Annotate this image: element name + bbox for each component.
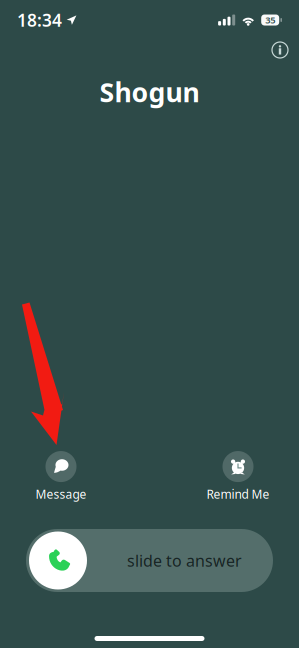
staticText: 18:34 (17, 8, 62, 31)
staticText: Message (35, 486, 86, 502)
button[interactable]: slide to answer (26, 529, 273, 592)
button[interactable]: Remind Me (188, 451, 288, 502)
staticText: Remind Me (206, 486, 269, 502)
staticText: slide to answer (127, 550, 242, 571)
staticText: 35 (265, 14, 275, 26)
staticText: Shogun (99, 74, 199, 110)
button[interactable]: Message (11, 451, 111, 502)
button[interactable]: Call info (261, 32, 299, 68)
